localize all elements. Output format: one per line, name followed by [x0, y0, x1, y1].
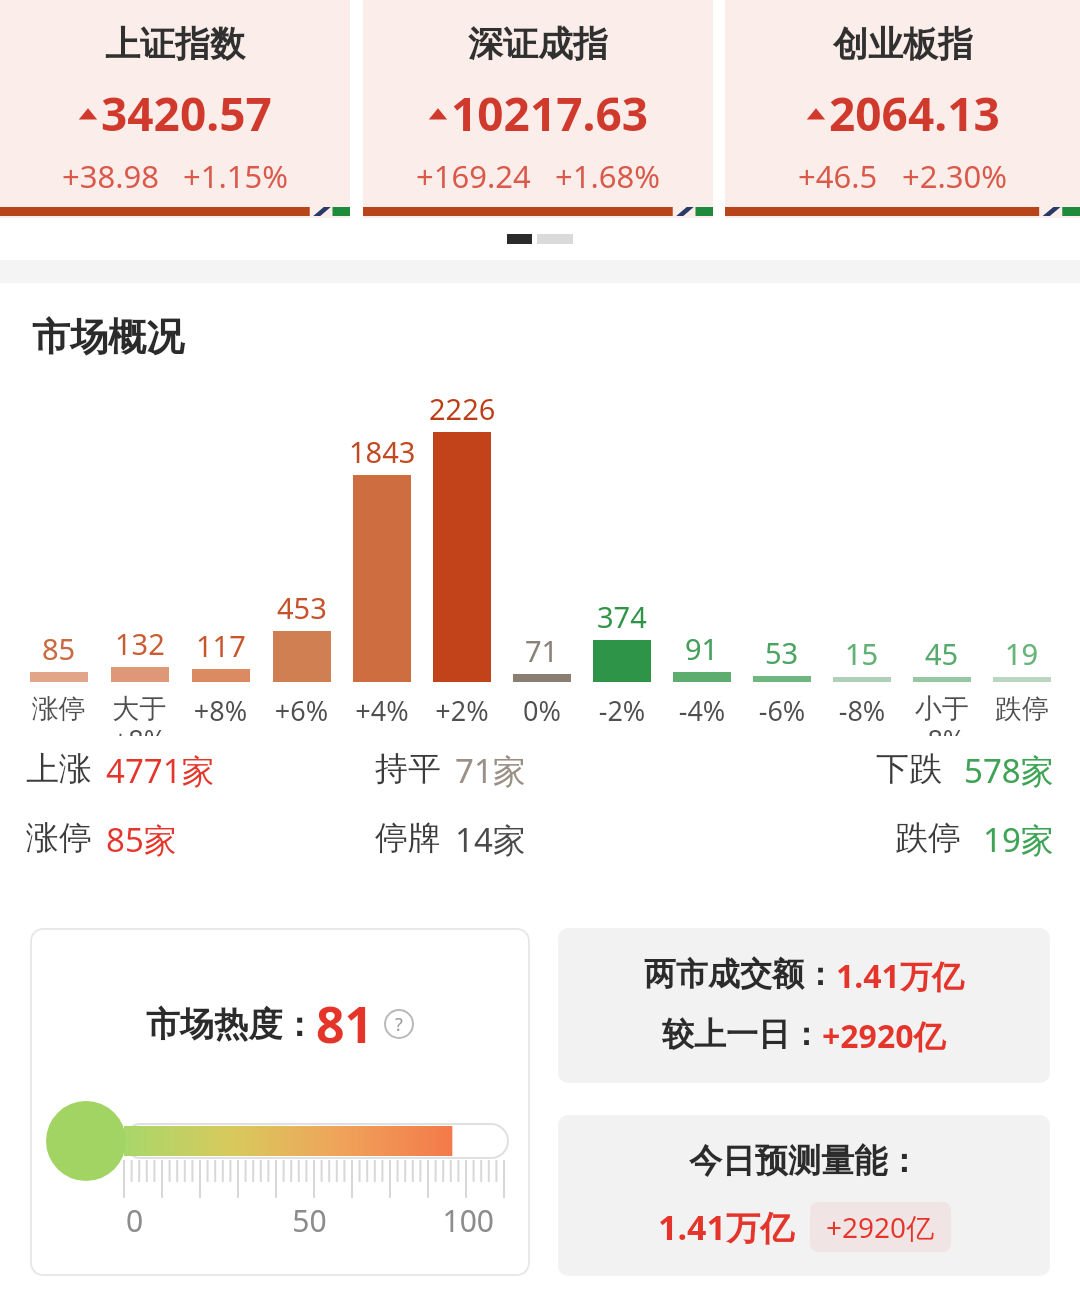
staticText: 578家: [964, 748, 1054, 793]
staticText: 停牌: [375, 817, 441, 859]
button[interactable]: 创业板指: [725, 0, 1080, 218]
staticText: 跌停: [895, 817, 961, 859]
staticText: +2920亿: [822, 1014, 946, 1058]
staticText: 市场热度：: [146, 1003, 316, 1046]
staticText: -2%: [582, 692, 662, 729]
staticText: 较上一日：: [662, 1014, 822, 1054]
staticText: 深证成指: [468, 22, 608, 66]
button[interactable]: 85: [18, 381, 99, 736]
button[interactable]: 453: [261, 381, 342, 736]
staticText: 19: [1005, 634, 1039, 673]
staticText: 大于 +8%: [99, 692, 180, 736]
button[interactable]: 45: [902, 381, 982, 736]
button[interactable]: 上证指数: [0, 0, 350, 218]
button[interactable]: 1843: [342, 381, 422, 736]
staticText: 涨停: [26, 817, 92, 859]
staticText: 85家: [106, 817, 177, 862]
staticText: +6%: [261, 692, 342, 729]
staticText: 91: [685, 629, 719, 668]
staticText: 2064.13: [829, 82, 1000, 145]
staticText: -6%: [742, 692, 822, 729]
staticText: 53: [765, 633, 799, 672]
staticText: 2226: [429, 389, 496, 428]
button[interactable]: 说明: [384, 1009, 414, 1039]
staticText: 374: [597, 597, 647, 636]
staticText: +1.15%: [183, 155, 288, 197]
staticText: 50: [248, 1200, 371, 1241]
button[interactable]: 374: [582, 381, 662, 736]
staticText: 市场概况: [32, 313, 184, 361]
staticText: 今日预测量能：: [689, 1140, 920, 1182]
staticText: 85: [42, 629, 76, 668]
staticText: 两市成交额：: [644, 954, 836, 994]
staticText: -4%: [662, 692, 742, 729]
button[interactable]: 19: [982, 381, 1062, 736]
staticText: -8%: [822, 692, 902, 729]
staticText: 小于 -8%: [902, 692, 982, 736]
button[interactable]: 53: [742, 381, 822, 736]
button[interactable]: 15: [822, 381, 902, 736]
staticText: 0%: [502, 692, 582, 729]
button[interactable]: 2226: [422, 381, 502, 736]
staticText: 创业板指: [833, 22, 973, 66]
staticText: 持平: [375, 748, 441, 790]
staticText: 81: [316, 990, 374, 1058]
staticText: 71: [525, 631, 559, 670]
staticText: +2.30%: [902, 155, 1007, 197]
button[interactable]: 深证成指: [363, 0, 713, 218]
staticText: +169.24: [416, 155, 531, 197]
button[interactable]: 132: [99, 381, 180, 736]
staticText: 45: [925, 634, 959, 673]
staticText: 1.41万亿: [658, 1204, 794, 1250]
button[interactable]: 今日预测量能：: [558, 1115, 1050, 1276]
staticText: 涨停: [18, 692, 99, 726]
staticText: 453: [277, 588, 327, 627]
staticText: +2920亿: [826, 1208, 935, 1246]
button[interactable]: 91: [662, 381, 742, 736]
staticText: +4%: [342, 692, 422, 729]
staticText: 1843: [349, 432, 416, 471]
staticText: +38.98: [62, 155, 159, 197]
staticText: ?: [395, 1012, 403, 1037]
staticText: 132: [115, 624, 165, 663]
staticText: 14家: [455, 817, 526, 862]
staticText: +46.5: [798, 155, 878, 197]
staticText: 上涨: [26, 748, 92, 790]
staticText: 跌停: [982, 692, 1062, 726]
staticText: 71家: [455, 748, 526, 793]
button[interactable]: 117: [180, 381, 261, 736]
staticText: 117: [196, 626, 246, 665]
staticText: +8%: [180, 692, 261, 729]
button[interactable]: 两市成交额：: [558, 928, 1050, 1083]
staticText: 下跌: [876, 748, 942, 790]
button[interactable]: 市场热度：: [30, 928, 530, 1276]
staticText: 1.41万亿: [836, 954, 964, 998]
staticText: 0: [126, 1200, 248, 1241]
staticText: 10217.63: [451, 82, 649, 145]
staticText: +2%: [422, 692, 502, 729]
staticText: 上证指数: [105, 22, 245, 66]
staticText: +1.68%: [555, 155, 660, 197]
staticText: 3420.57: [101, 82, 272, 145]
button[interactable]: 71: [502, 381, 582, 736]
staticText: 4771家: [106, 748, 215, 793]
staticText: 19家: [983, 817, 1054, 862]
staticText: 15: [845, 634, 879, 673]
staticText: 100: [371, 1200, 494, 1241]
